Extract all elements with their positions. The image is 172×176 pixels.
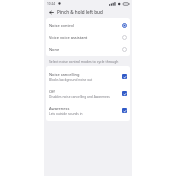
button[interactable]: Noise control [46,19,130,31]
button[interactable]: None [46,43,130,55]
staticText: None [49,47,120,52]
staticText: Off [49,89,55,94]
staticText: Select noise control modes to cycle thro… [49,59,119,64]
staticText: Pinch & hold left bud [57,9,103,15]
staticText: Disables noise cancelling and Awareness [49,95,110,99]
button[interactable]: Off [46,85,130,102]
button[interactable]: Back [47,8,55,16]
staticText: Blocks background noise out [49,78,93,82]
button[interactable]: Voice voice assistant [46,31,130,43]
button[interactable]: Noise cancelling [46,68,130,85]
staticText: Awareness [49,106,70,111]
staticText: 10:24 [47,2,56,6]
staticText: Lets outside sounds in [49,112,83,116]
staticText: Noise cancelling [49,72,80,77]
staticText: Noise control [49,23,120,28]
button[interactable]: Awareness [46,102,130,119]
staticText: Voice voice assistant [49,35,120,40]
